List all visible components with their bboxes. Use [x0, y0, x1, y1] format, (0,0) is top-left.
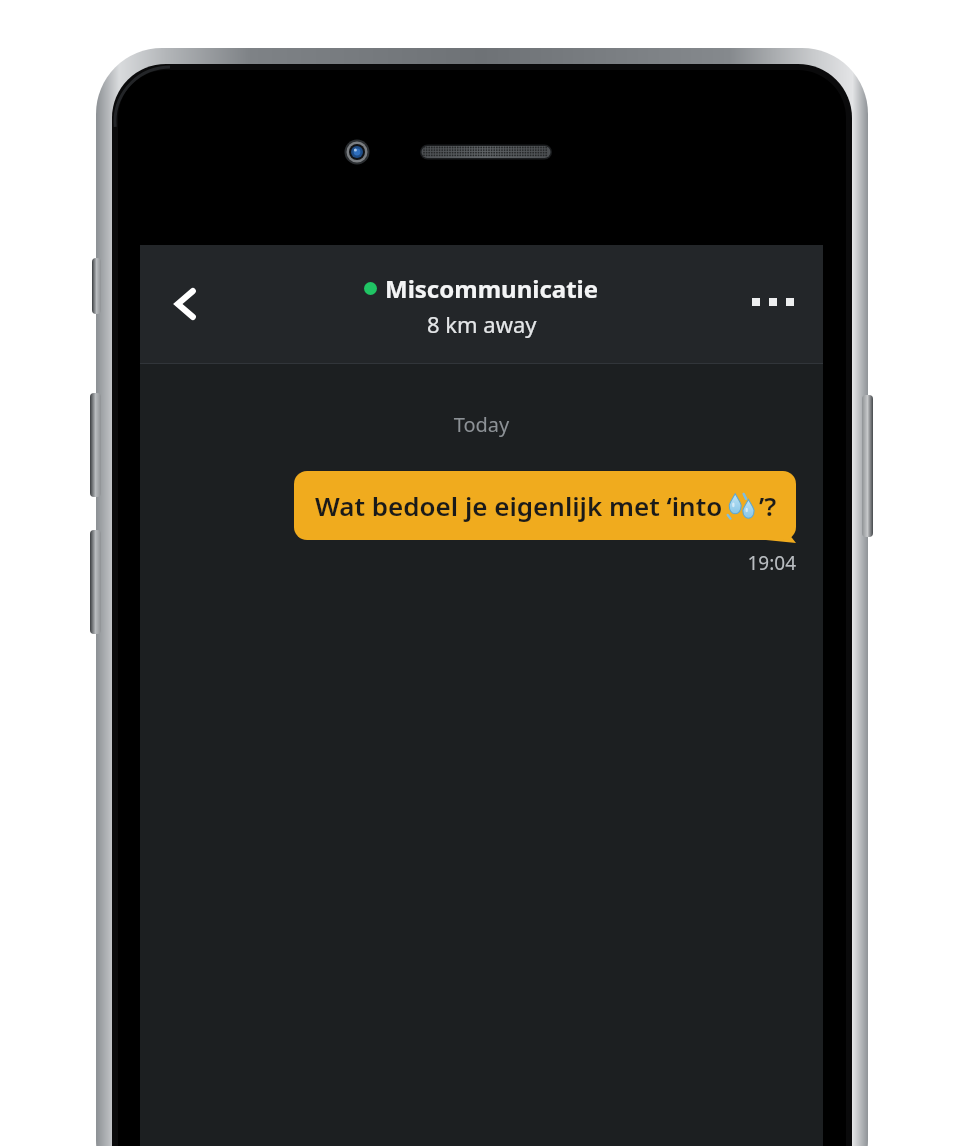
button[interactable]: Wat bedoel je eigenlijk met ‘into	[294, 471, 796, 540]
staticText: 19:04	[140, 550, 796, 576]
staticText: Miscommunicatie	[385, 272, 599, 305]
staticText: Today	[140, 411, 823, 438]
staticText: 8 km away	[427, 309, 537, 339]
button[interactable]: More options	[737, 270, 809, 334]
button[interactable]: Back	[150, 268, 222, 340]
staticText: ’?	[759, 488, 777, 523]
staticText: Wat bedoel je eigenlijk met ‘into	[315, 488, 723, 523]
